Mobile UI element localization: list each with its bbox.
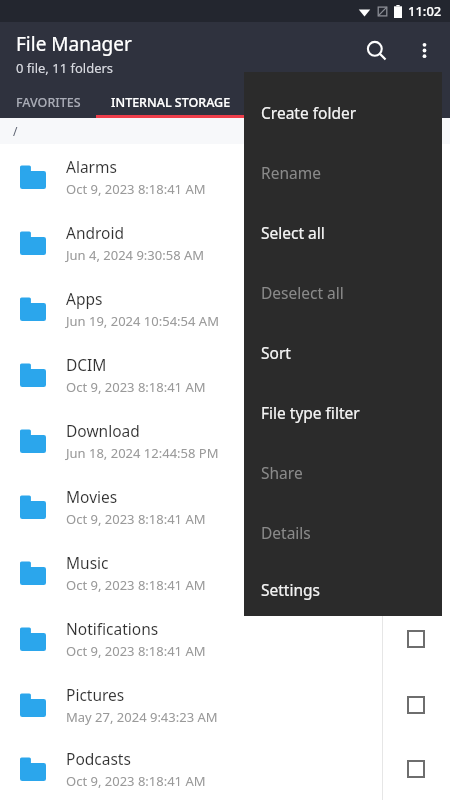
staticText: May 27, 2024 9:43:23 AM bbox=[66, 708, 218, 726]
button[interactable]: Select Notifications bbox=[399, 622, 433, 656]
button[interactable]: Music bbox=[0, 540, 450, 606]
button[interactable]: Details bbox=[244, 502, 442, 562]
button[interactable]: Share bbox=[244, 442, 442, 502]
staticText: Oct 9, 2023 8:18:41 AM bbox=[66, 772, 206, 790]
staticText: Deselect all bbox=[261, 282, 344, 303]
staticText: Alarms bbox=[66, 156, 117, 177]
staticText: Android bbox=[66, 222, 125, 243]
staticText: / bbox=[13, 123, 18, 139]
staticText: FAVORITES bbox=[16, 94, 81, 111]
staticText: 11:02 bbox=[408, 2, 442, 20]
button[interactable]: Notifications bbox=[0, 606, 450, 672]
button[interactable]: Alarms bbox=[0, 144, 450, 210]
button[interactable]: Select Pictures bbox=[399, 688, 433, 722]
button[interactable]: Pictures bbox=[0, 672, 450, 738]
staticText: Jun 18, 2024 12:44:58 PM bbox=[66, 444, 219, 462]
button[interactable]: Create folder bbox=[244, 82, 442, 142]
staticText: Oct 9, 2023 8:18:41 AM bbox=[66, 378, 206, 396]
button[interactable]: Search bbox=[352, 26, 400, 74]
staticText: INTERNAL STORAGE bbox=[111, 94, 231, 111]
staticText: Select all bbox=[261, 222, 325, 243]
button[interactable]: Settings bbox=[244, 562, 442, 616]
button[interactable]: Select Podcasts bbox=[399, 752, 433, 786]
staticText: Details bbox=[261, 522, 311, 543]
button[interactable]: DCIM bbox=[0, 342, 450, 408]
button[interactable]: Download bbox=[0, 408, 450, 474]
staticText: Jun 4, 2024 9:30:58 AM bbox=[66, 246, 205, 264]
staticText: Pictures bbox=[66, 684, 125, 705]
staticText: Movies bbox=[66, 486, 118, 507]
staticText: Apps bbox=[66, 288, 103, 309]
staticText: Create folder bbox=[261, 102, 357, 123]
staticText: Download bbox=[66, 420, 140, 441]
staticText: Sort bbox=[261, 342, 291, 363]
staticText: Settings bbox=[261, 579, 320, 600]
button[interactable]: Android bbox=[0, 210, 450, 276]
staticText: Oct 9, 2023 8:18:41 AM bbox=[66, 642, 206, 660]
button[interactable]: Sort bbox=[244, 322, 442, 382]
button[interactable]: INTERNAL STORAGE bbox=[96, 86, 246, 118]
staticText: Oct 9, 2023 8:18:41 AM bbox=[66, 576, 206, 594]
staticText: File Manager bbox=[16, 31, 132, 57]
button[interactable]: Movies bbox=[0, 474, 450, 540]
button[interactable]: FAVORITES bbox=[0, 86, 96, 118]
staticText: 0 file, 11 folders bbox=[16, 59, 114, 77]
button[interactable]: Deselect all bbox=[244, 262, 442, 322]
button[interactable]: More options bbox=[400, 26, 448, 74]
staticText: File type filter bbox=[261, 402, 360, 423]
staticText: Share bbox=[261, 462, 303, 483]
staticText: Music bbox=[66, 552, 109, 573]
staticText: Podcasts bbox=[66, 748, 131, 769]
button[interactable]: Podcasts bbox=[0, 738, 450, 800]
button[interactable]: File type filter bbox=[244, 382, 442, 442]
staticText: DCIM bbox=[66, 354, 107, 375]
staticText: Jun 19, 2024 10:54:54 AM bbox=[66, 312, 219, 330]
staticText: Oct 9, 2023 8:18:41 AM bbox=[66, 180, 206, 198]
staticText: Oct 9, 2023 8:18:41 AM bbox=[66, 510, 206, 528]
button[interactable]: Apps bbox=[0, 276, 450, 342]
staticText: Notifications bbox=[66, 618, 159, 639]
staticText: Rename bbox=[261, 162, 321, 183]
button[interactable]: Select all bbox=[244, 202, 442, 262]
button[interactable]: Rename bbox=[244, 142, 442, 202]
